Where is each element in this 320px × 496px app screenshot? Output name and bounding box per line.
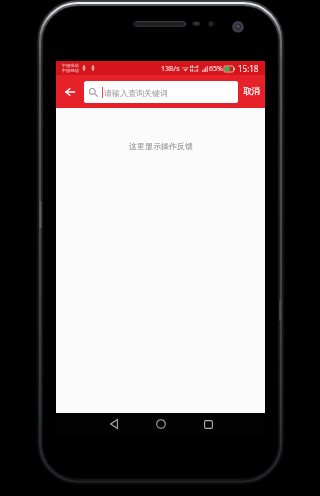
- button[interactable]: Home: [150, 413, 172, 435]
- button[interactable]: 取消: [238, 75, 265, 108]
- staticText: 这里显示操作反馈: [129, 141, 193, 151]
- staticText: 65%: [209, 64, 223, 74]
- staticText: 请输入查询关键词: [104, 88, 168, 98]
- staticText: 取消: [243, 86, 261, 97]
- button[interactable]: Back: [103, 413, 125, 435]
- button[interactable]: Recent apps: [197, 413, 219, 435]
- button[interactable]: 请输入查询关键词: [84, 81, 238, 103]
- staticText: 13B/s: [161, 64, 180, 74]
- staticText: 中国移动: [62, 68, 79, 73]
- staticText: 15:18: [238, 63, 259, 74]
- button[interactable]: Back: [56, 75, 84, 108]
- staticText: 中国电信: [62, 63, 79, 68]
